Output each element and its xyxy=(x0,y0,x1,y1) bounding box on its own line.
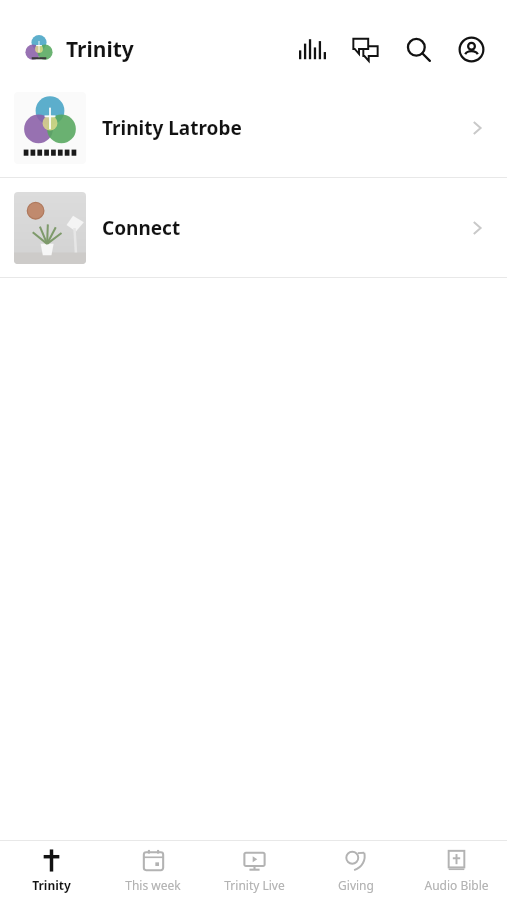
staticText: Trinity xyxy=(32,877,71,893)
button[interactable]: Messages xyxy=(347,31,383,67)
button[interactable]: Giving xyxy=(305,841,406,900)
staticText: Connect xyxy=(102,215,181,241)
button[interactable]: Connect xyxy=(0,178,507,277)
button[interactable]: Trinity xyxy=(0,841,102,900)
button[interactable]: Trinity Latrobe xyxy=(0,78,507,177)
staticText: Trinity xyxy=(66,35,134,64)
button[interactable]: Search xyxy=(400,31,436,67)
staticText: Giving xyxy=(338,877,374,893)
button[interactable]: Equalizer xyxy=(294,31,330,67)
staticText: This week xyxy=(125,877,181,893)
staticText: Trinity Live xyxy=(224,877,285,893)
staticText: Audio Bible xyxy=(424,877,489,893)
button[interactable]: Account xyxy=(453,31,489,67)
button[interactable]: Trinity Live xyxy=(204,841,305,900)
button[interactable]: Audio Bible xyxy=(406,841,507,900)
staticText: Trinity Latrobe xyxy=(102,115,242,141)
button[interactable]: This week xyxy=(102,841,204,900)
